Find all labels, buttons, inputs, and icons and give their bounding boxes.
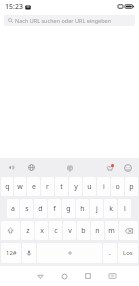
button[interactable]: g [62,199,75,218]
staticText: n [95,226,100,236]
button[interactable]: f [48,199,61,218]
staticText: w [17,182,23,192]
staticText: b [81,226,86,236]
staticText: i [103,182,105,192]
button[interactable]: r [41,177,54,196]
button[interactable]: Voice input [22,243,36,263]
button[interactable]: i [97,177,110,196]
staticText: j [96,204,98,214]
button[interactable]: Change language [26,162,37,173]
button[interactable]: Hide keyboard [100,266,124,286]
button[interactable]: Space [37,243,102,263]
staticText: 15:23 [5,2,23,12]
button[interactable]: q [1,177,13,196]
button[interactable]: Themes [104,162,115,173]
button[interactable]: p [125,177,138,196]
staticText: Nach URL suchen oder URL eingeben [15,17,112,24]
button[interactable]: j [90,199,103,218]
button[interactable]: . [103,243,117,263]
button[interactable]: Shift [1,221,20,240]
staticText: r [46,182,49,192]
button[interactable]: s [20,199,33,218]
button[interactable]: a [7,199,19,218]
staticText: k [109,204,113,214]
button[interactable]: o [111,177,124,196]
staticText: c [54,226,58,236]
staticText: f [53,204,56,214]
button[interactable]: z [21,221,34,240]
button[interactable]: Back [28,266,52,286]
staticText: p [129,182,134,192]
button[interactable]: c [49,221,62,240]
button[interactable]: k [104,199,117,218]
button[interactable]: Emoji [122,162,133,173]
button[interactable]: 12# [1,243,21,263]
button[interactable]: l [118,199,131,218]
button[interactable]: d [34,199,47,218]
staticText: z [26,226,30,236]
button[interactable]: u [83,177,96,196]
staticText: m [108,226,115,236]
staticText: Los [123,249,133,257]
button[interactable]: v [63,221,76,240]
staticText: v [68,226,72,236]
button[interactable]: Recent apps [76,266,100,286]
button[interactable]: y [69,177,82,196]
staticText: h [80,204,85,214]
staticText: d [38,204,43,214]
staticText: g [66,204,71,214]
button[interactable]: Nach URL suchen oder URL eingeben [4,15,135,26]
staticText: q [5,182,10,192]
button[interactable]: Clipboard [64,162,75,173]
staticText: a [11,204,15,214]
staticText: l [124,204,126,214]
button[interactable]: Home [52,266,76,286]
button[interactable]: Backspace [119,221,138,240]
button[interactable]: x [35,221,48,240]
staticText: t [60,182,63,192]
staticText: 12# [6,249,17,257]
button[interactable]: w [14,177,26,196]
button[interactable]: Sound settings [6,162,17,173]
button[interactable]: e [27,177,40,196]
staticText: u [87,182,92,192]
button[interactable]: Los [118,243,138,263]
staticText: y [74,182,78,192]
staticText: e [32,182,36,192]
staticText: . [109,248,111,258]
button[interactable]: n [91,221,104,240]
button[interactable]: b [77,221,90,240]
staticText: x [40,226,44,236]
button[interactable]: m [105,221,118,240]
button[interactable]: h [76,199,89,218]
staticText: s [25,204,29,214]
button[interactable]: t [55,177,68,196]
staticText: o [115,182,120,192]
